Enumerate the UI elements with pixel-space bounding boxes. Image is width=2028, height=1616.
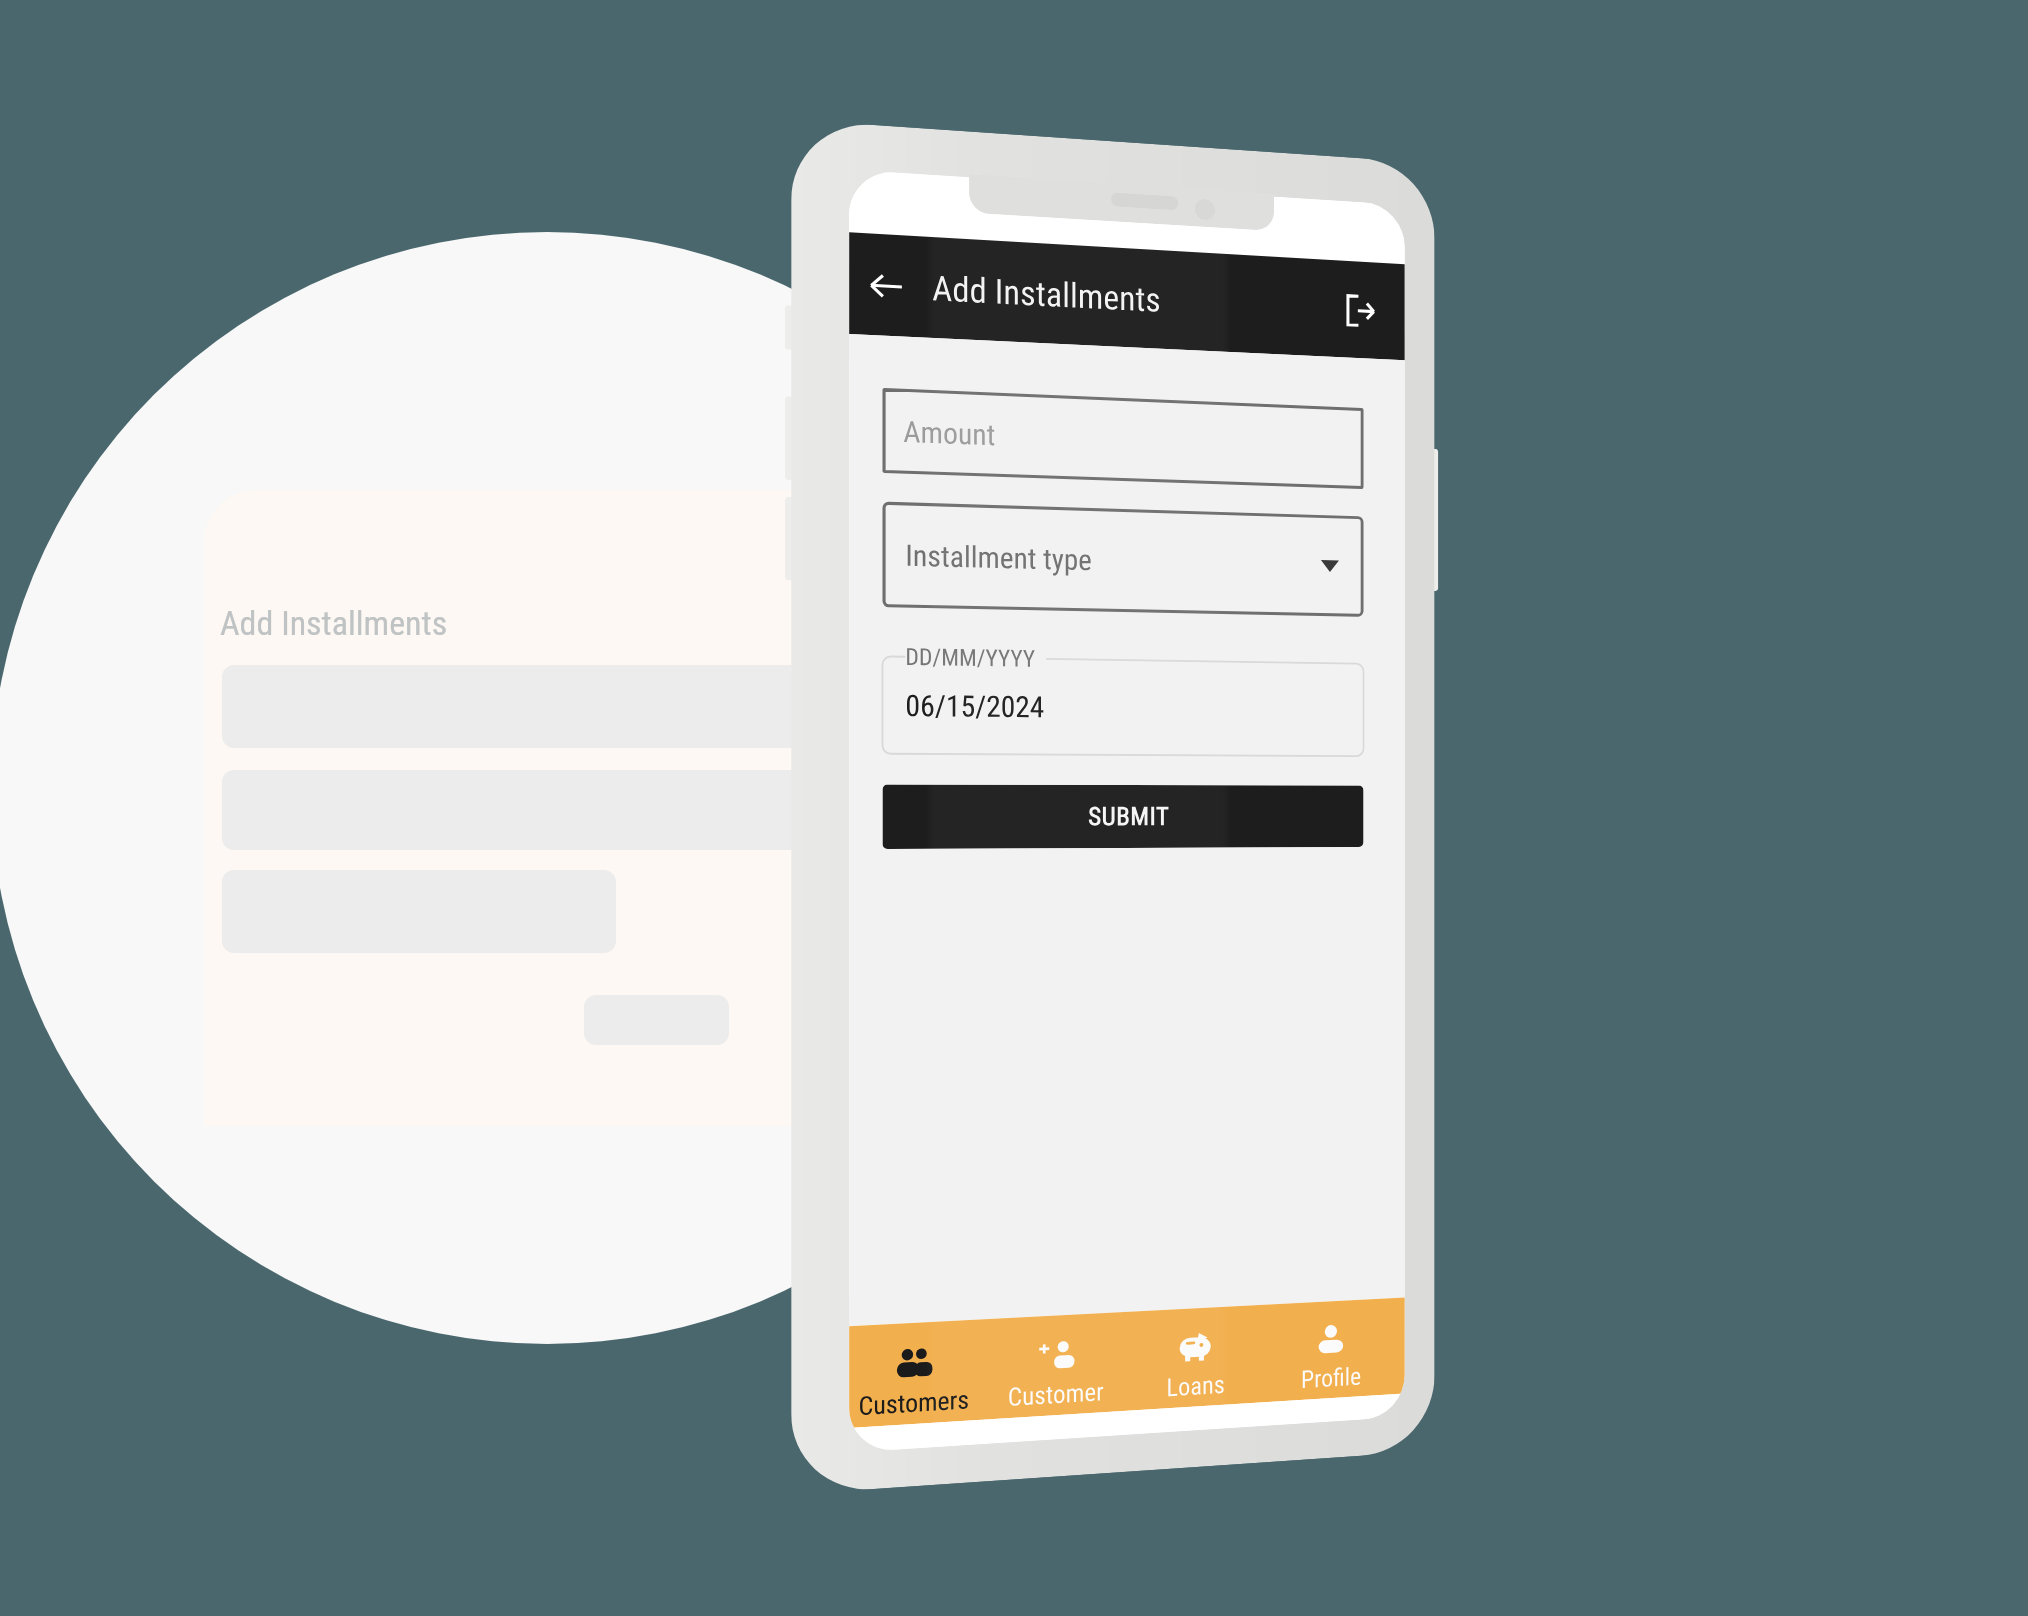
staticText: DD/MM/YYYY [905, 643, 1035, 673]
staticText: Loans [1166, 1370, 1225, 1402]
button[interactable]: Loans [1134, 1304, 1271, 1410]
staticText: 06/15/2024 [905, 688, 1045, 724]
button[interactable]: Installment type [882, 502, 1363, 617]
button[interactable]: 06/15/2024 [882, 656, 1363, 756]
staticText: Customers [858, 1385, 969, 1421]
staticText: Profile [1301, 1362, 1362, 1394]
staticText: Amount [903, 414, 995, 452]
staticText: SUBMIT [1088, 802, 1170, 831]
button[interactable]: Profile [1271, 1297, 1405, 1402]
button[interactable]: Log out [1336, 284, 1385, 337]
staticText: Customer [1008, 1377, 1104, 1412]
staticText: Installment type [905, 538, 1092, 577]
staticText: Add Installments [932, 268, 1161, 320]
button[interactable]: SUBMIT [882, 784, 1363, 849]
button[interactable]: Amount [882, 388, 1363, 489]
staticText: Add Installments [220, 603, 448, 643]
button[interactable]: Customers [849, 1319, 993, 1428]
button[interactable]: Back [858, 257, 912, 313]
button[interactable]: Customer [993, 1311, 1134, 1419]
